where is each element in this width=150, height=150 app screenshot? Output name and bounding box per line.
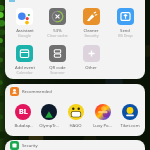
staticText: Other [85, 65, 97, 71]
button[interactable]: HAGO [62, 104, 89, 129]
staticText: Security [84, 33, 99, 38]
staticText: Google [18, 33, 31, 38]
staticText: QR code [49, 65, 66, 71]
staticText: Bukalap.. [14, 123, 33, 129]
staticText: Send [120, 28, 130, 34]
button[interactable]: Assistant [8, 8, 41, 39]
button[interactable]: Cleaner [74, 8, 108, 39]
button[interactable]: OlympTr... [36, 104, 62, 129]
button[interactable]: Add event [8, 45, 41, 76]
button[interactable]: Tiket.com [116, 104, 143, 129]
staticText: Calendar [16, 70, 33, 75]
button[interactable]: BL [10, 104, 36, 129]
staticText: Luxy Po... [93, 123, 112, 129]
staticText: Recommended [22, 89, 52, 95]
staticText: Clear cache [47, 33, 68, 38]
button[interactable]: Recommended [10, 87, 52, 96]
button[interactable]: 53% [41, 8, 74, 39]
button[interactable]: Other [74, 45, 108, 76]
button[interactable]: QR code [41, 45, 74, 76]
button[interactable]: Luxy Po... [89, 104, 116, 129]
staticText: HAGO [69, 123, 82, 129]
staticText: Security [22, 143, 38, 149]
staticText: 53% [53, 28, 62, 34]
staticText: Mi Drop [118, 33, 133, 38]
staticText: Assistant [16, 28, 34, 34]
staticText: Tiket.com [120, 123, 140, 129]
button[interactable]: Security [10, 141, 38, 150]
staticText: Cleaner [83, 28, 99, 34]
staticText: Scanner [50, 70, 65, 75]
button[interactable]: Send [108, 8, 142, 39]
staticText: BL [19, 107, 28, 117]
staticText: Add event [15, 65, 35, 71]
staticText: OlympTr... [39, 123, 59, 129]
